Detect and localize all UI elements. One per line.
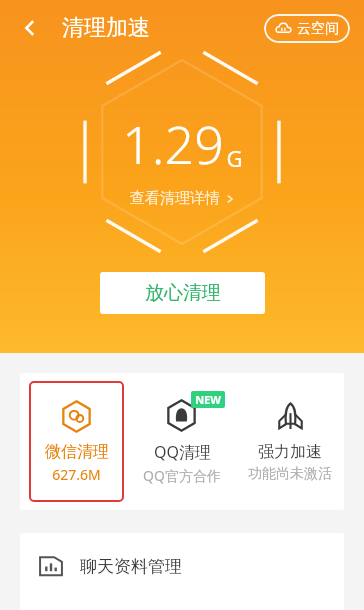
button[interactable]: 放心清理 bbox=[100, 272, 265, 314]
button[interactable]: 云空间 bbox=[264, 14, 350, 43]
staticText: 1.29 bbox=[122, 108, 224, 179]
staticText: 功能尚未激活 bbox=[248, 465, 332, 483]
staticText: 放心清理 bbox=[145, 281, 221, 305]
button[interactable]: 聊天资料管理 bbox=[20, 533, 344, 599]
staticText: 查看清理详情 bbox=[130, 189, 220, 208]
staticText: 627.6M bbox=[52, 465, 101, 484]
button[interactable]: NEW bbox=[128, 373, 236, 510]
button[interactable]: Back bbox=[8, 6, 52, 50]
staticText: 云空间 bbox=[297, 20, 339, 38]
staticText: G bbox=[226, 143, 243, 173]
staticText: NEW bbox=[195, 392, 221, 407]
button[interactable]: 强力加速 bbox=[236, 373, 344, 510]
staticText: 聊天资料管理 bbox=[80, 556, 182, 577]
staticText: QQ清理 bbox=[154, 441, 211, 463]
staticText: 清理加速 bbox=[62, 14, 150, 42]
staticText: QQ官方合作 bbox=[143, 466, 221, 485]
button[interactable]: 查看清理详情 bbox=[124, 187, 241, 210]
button[interactable]: 微信清理 bbox=[29, 381, 124, 502]
staticText: 微信清理 bbox=[45, 442, 109, 462]
staticText: 强力加速 bbox=[258, 442, 322, 462]
